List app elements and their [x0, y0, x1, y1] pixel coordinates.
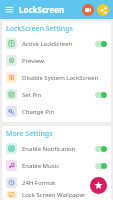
button[interactable]: Enable Notification toggle: [95, 146, 107, 152]
button[interactable]: Set Pin: [2, 86, 111, 103]
staticText: 24H Format: [22, 179, 107, 187]
button[interactable]: Active LockScreen: [2, 35, 111, 52]
button[interactable]: Active LockScreen toggle: [95, 41, 107, 47]
button[interactable]: Enable Notification: [2, 140, 111, 157]
staticText: Lock Screen Wallpaper: [22, 191, 107, 198]
staticText: Enable Notification: [22, 145, 93, 153]
staticText: Change Pin: [22, 108, 107, 116]
button[interactable]: Open navigation menu: [4, 4, 15, 15]
button[interactable]: Share: [97, 4, 109, 16]
staticText: Enable Music: [22, 162, 93, 170]
staticText: LockScreen Settings: [6, 24, 73, 34]
staticText: Active LockScreen: [22, 40, 93, 48]
button[interactable]: Lock Screen Wallpaper: [2, 191, 111, 198]
staticText: Disable System LockScreen: [22, 74, 107, 82]
button[interactable]: Enable Music: [2, 157, 111, 174]
staticText: Preview: [22, 57, 107, 65]
button[interactable]: Disable System LockScreen: [2, 69, 111, 86]
button[interactable]: Preview: [2, 52, 111, 69]
button[interactable]: Rate app: [90, 177, 107, 194]
button[interactable]: Enable Music toggle: [95, 163, 107, 169]
staticText: LockScreen: [19, 4, 65, 15]
button[interactable]: Change Pin: [2, 103, 111, 120]
button[interactable]: 24H Format: [2, 174, 111, 191]
staticText: More Settings: [6, 129, 53, 139]
button[interactable]: Promo video: [82, 4, 94, 16]
staticText: Set Pin: [22, 91, 93, 99]
button[interactable]: Set Pin toggle: [95, 92, 107, 98]
